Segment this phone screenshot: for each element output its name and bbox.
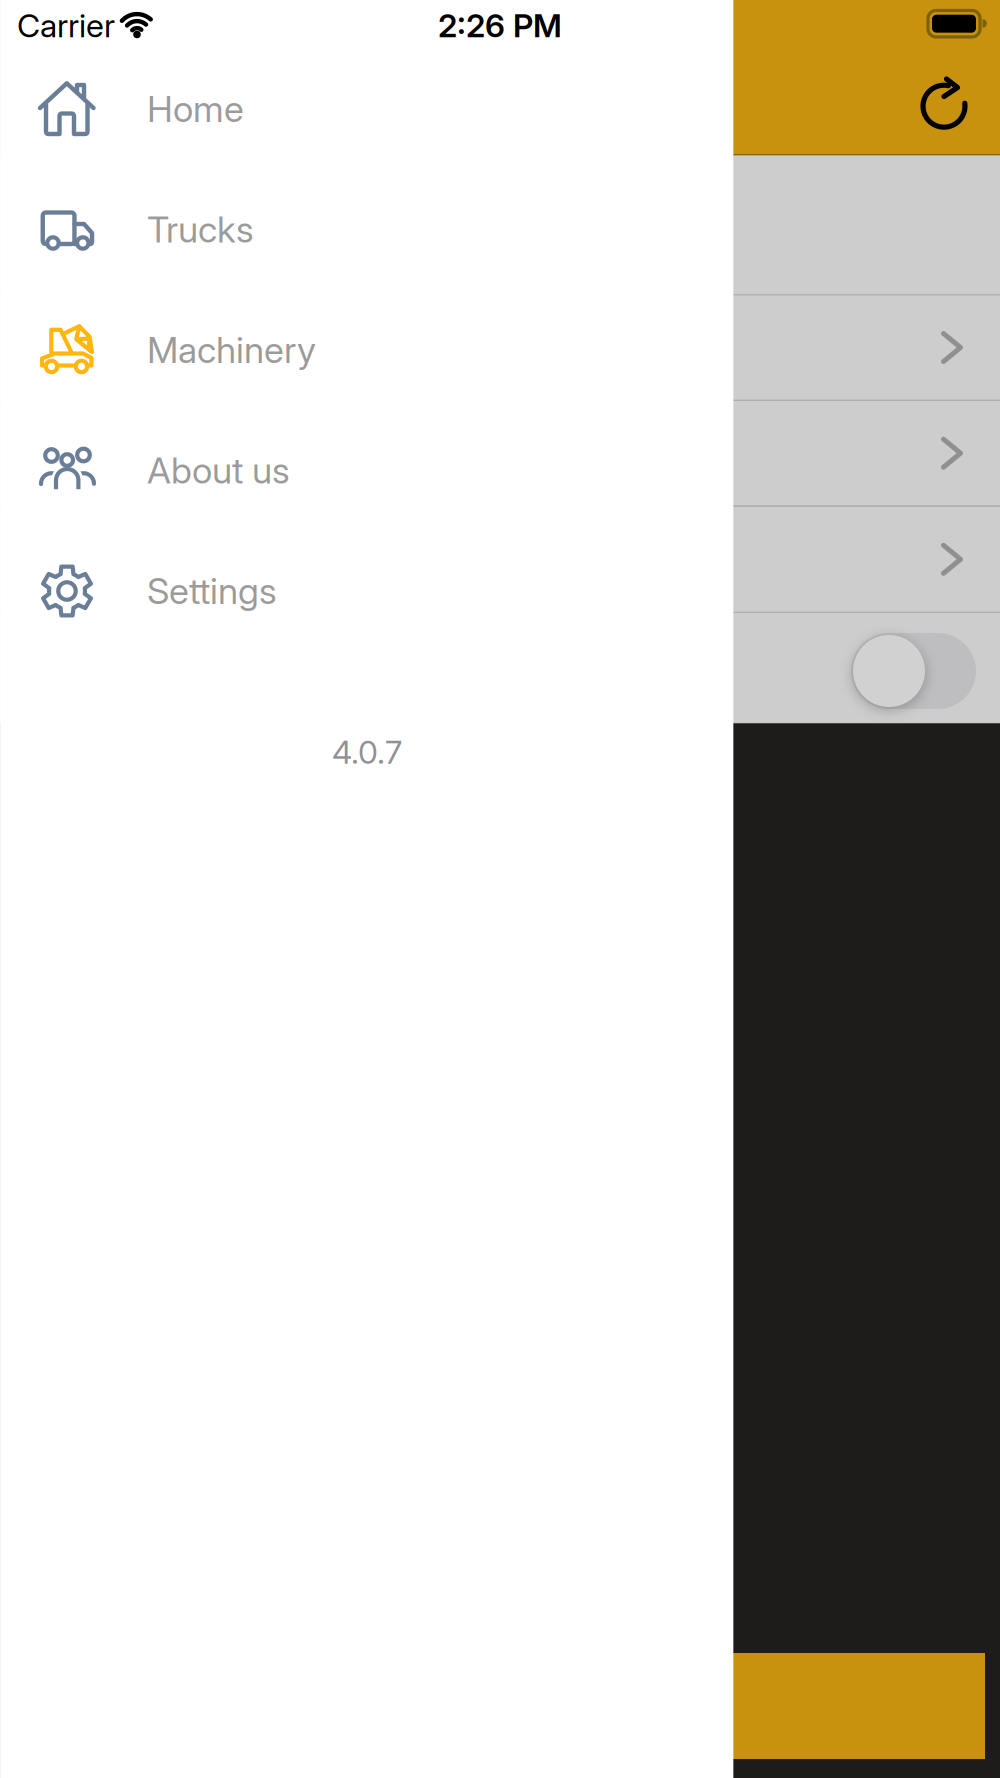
- staticText: 4.0.7: [332, 733, 402, 771]
- button[interactable]: Settings: [0, 531, 733, 651]
- staticText: Settings: [147, 570, 277, 612]
- button[interactable]: Toggle: [851, 633, 976, 709]
- button[interactable]: Machinery: [0, 290, 733, 410]
- staticText: Carrier: [17, 7, 115, 44]
- button[interactable]: List item 1: [0, 295, 1000, 400]
- button[interactable]: List item 2: [0, 400, 1000, 506]
- staticText: 2:26 PM: [438, 7, 562, 44]
- button[interactable]: Home: [0, 49, 733, 169]
- staticText: Machinery: [147, 329, 316, 371]
- button[interactable]: About us: [0, 410, 733, 530]
- button[interactable]: List item 3: [0, 506, 1000, 612]
- button[interactable]: Search: [15, 1653, 985, 1759]
- staticText: About us: [147, 449, 290, 492]
- staticText: Home: [147, 88, 244, 130]
- button[interactable]: Trucks: [0, 169, 733, 289]
- staticText: Trucks: [147, 208, 254, 251]
- button[interactable]: Refresh: [914, 74, 974, 134]
